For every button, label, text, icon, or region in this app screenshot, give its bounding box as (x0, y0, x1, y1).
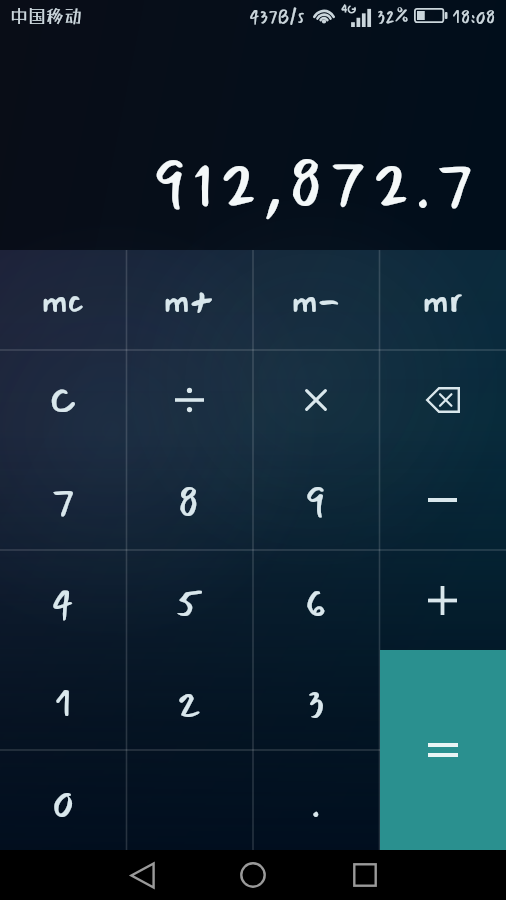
button[interactable]: 6 (252, 550, 379, 650)
button[interactable]: m+ (126, 250, 252, 350)
button[interactable]: C (0, 350, 126, 450)
button[interactable]: Minus (379, 450, 506, 550)
button[interactable]: Home (223, 850, 283, 900)
button[interactable]: Backspace (379, 350, 506, 450)
button[interactable]: 4 (0, 550, 126, 650)
staticText: 3 (307, 673, 325, 735)
button[interactable]: . (252, 750, 379, 850)
button[interactable] (379, 750, 506, 850)
button[interactable]: mc (0, 250, 126, 350)
button[interactable]: 9 (252, 450, 379, 550)
staticText: 32% (377, 3, 409, 31)
button[interactable]: 0 (0, 750, 126, 850)
staticText: mr (423, 272, 463, 329)
other: Divide (175, 388, 204, 412)
button[interactable]: Divide (126, 350, 252, 450)
staticText: 8 (178, 473, 200, 535)
other: Minus (428, 497, 457, 503)
other: Backspace (426, 387, 460, 413)
staticText: . (311, 773, 321, 835)
staticText: 中国移动 (10, 5, 82, 26)
button[interactable]: 1 (0, 650, 126, 750)
button[interactable]: Equals (380, 650, 506, 850)
button[interactable]: m- (252, 250, 379, 350)
button[interactable]: Plus (379, 550, 506, 650)
button[interactable]: 8 (126, 450, 252, 550)
staticText: 18:08 (452, 3, 496, 31)
button[interactable]: mr (379, 250, 506, 350)
staticText: 2 (177, 673, 202, 735)
staticText: 4 (51, 573, 75, 635)
button[interactable]: Back (112, 850, 172, 900)
staticText: 7 (51, 473, 75, 535)
button[interactable]: 2 (126, 650, 252, 750)
staticText: 912,872.7 (153, 137, 480, 235)
staticText: 1 (54, 673, 73, 735)
staticText: 5 (175, 573, 203, 635)
staticText: m+ (164, 272, 214, 329)
button[interactable]: Recents (335, 850, 395, 900)
button[interactable] (126, 750, 252, 850)
staticText: C (50, 371, 77, 429)
button[interactable]: 5 (126, 550, 252, 650)
other: Multiply (305, 389, 327, 411)
button[interactable]: Multiply (252, 350, 379, 450)
other: Plus (428, 586, 457, 615)
button[interactable] (379, 650, 506, 750)
staticText: mc (42, 272, 85, 329)
staticText: 9 (305, 473, 326, 535)
button[interactable]: 3 (252, 650, 379, 750)
staticText: 0 (52, 773, 74, 835)
staticText: 6 (305, 573, 327, 635)
staticText: 437B/s (249, 3, 305, 31)
staticText: m- (292, 272, 340, 329)
button[interactable]: 7 (0, 450, 126, 550)
